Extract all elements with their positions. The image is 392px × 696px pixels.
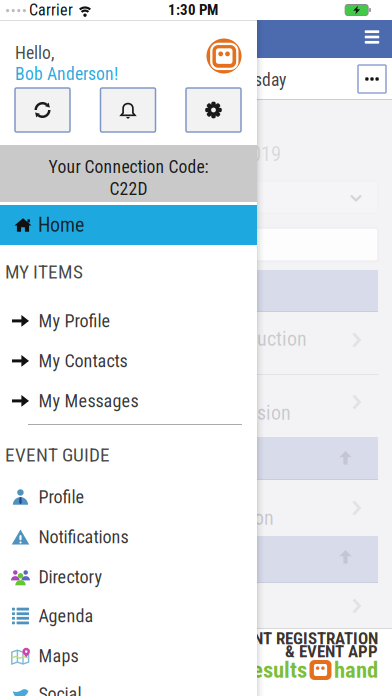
button[interactable]: Social [0, 683, 257, 696]
staticText: Session [229, 401, 291, 425]
staticText: Hello, [15, 43, 54, 63]
staticText: My Messages [38, 390, 138, 412]
button[interactable]: Maps [0, 636, 257, 676]
staticText: Social [38, 683, 81, 696]
button[interactable]: Agenda [0, 596, 257, 636]
button[interactable]: Settings [186, 88, 241, 132]
staticText: EVENT GUIDE [5, 444, 110, 466]
button[interactable]: Notifications [0, 517, 257, 557]
staticText: Directory [38, 566, 102, 588]
staticText: Carrier [29, 1, 73, 19]
staticText: April 30, 2019 [169, 142, 281, 166]
staticText: & EVENT APP [285, 642, 378, 661]
staticText: MY ITEMS [5, 261, 83, 283]
button[interactable]: Home [0, 205, 257, 245]
staticText: Home [38, 213, 84, 237]
staticText: Bob Anderson! [15, 64, 118, 84]
staticText: results [245, 657, 307, 683]
staticText: Agenda [38, 605, 93, 627]
staticText: hand [334, 657, 378, 683]
button[interactable]: My Contacts [0, 341, 257, 381]
staticText: My Profile [38, 310, 110, 332]
staticText: My Contacts [38, 350, 127, 372]
staticText: Notifications [38, 526, 128, 548]
staticText: Your Connection Code: [48, 157, 208, 177]
button[interactable]: Menu [357, 24, 387, 50]
staticText: 1:30 PM [168, 1, 218, 19]
staticText: Maps [38, 645, 78, 667]
button[interactable]: Notifications [100, 88, 155, 132]
staticText: Tuesday [229, 70, 286, 90]
button[interactable]: My Profile [0, 301, 257, 341]
button[interactable]: Profile [0, 477, 257, 517]
staticText: Auction [246, 327, 307, 351]
staticText: EVENT REGISTRATION [227, 629, 378, 648]
button[interactable]: results at hand [206, 38, 241, 73]
staticText: C22D [109, 179, 147, 199]
button[interactable]: More dates [358, 65, 386, 93]
button[interactable]: Refresh [15, 88, 70, 132]
button[interactable]: My Messages [0, 381, 257, 421]
button[interactable]: Directory [0, 557, 257, 597]
staticText: Reception [195, 506, 274, 530]
staticText: Profile [38, 486, 84, 508]
